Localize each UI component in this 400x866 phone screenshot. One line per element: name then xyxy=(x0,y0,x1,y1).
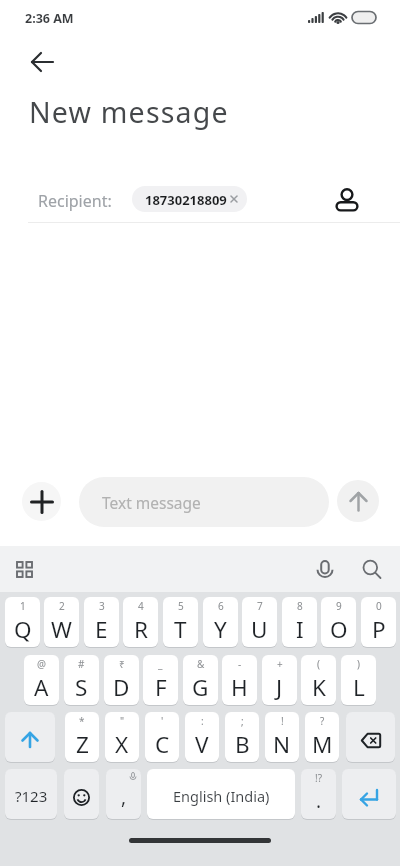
button[interactable]: ₹ xyxy=(104,655,139,705)
staticText: M xyxy=(312,729,333,760)
staticText: : xyxy=(201,714,204,728)
staticText: Q xyxy=(14,614,32,645)
staticText: ) xyxy=(357,657,360,671)
button[interactable]: 5 xyxy=(163,597,198,647)
staticText: 9 xyxy=(336,599,342,613)
button[interactable]: 7 xyxy=(242,597,277,647)
button[interactable]: English (India) xyxy=(147,769,295,819)
button[interactable] xyxy=(8,554,42,588)
button[interactable] xyxy=(346,712,395,762)
staticText: _ xyxy=(158,657,163,671)
button[interactable]: " xyxy=(105,712,139,762)
staticText: , xyxy=(121,784,127,810)
staticText: Text message xyxy=(102,492,201,513)
button[interactable]: @ xyxy=(24,655,59,705)
button[interactable] xyxy=(330,182,364,216)
staticText: C xyxy=(155,729,170,760)
button[interactable]: 2 xyxy=(44,597,79,647)
staticText: W xyxy=(51,614,72,645)
staticText: N xyxy=(273,729,291,760)
button[interactable] xyxy=(308,553,342,587)
staticText: F xyxy=(155,672,167,703)
button[interactable]: ? xyxy=(305,712,339,762)
staticText: ? xyxy=(320,714,325,728)
staticText: P xyxy=(372,614,386,645)
staticText: G xyxy=(192,672,209,703)
staticText: R xyxy=(134,614,148,645)
button[interactable] xyxy=(5,712,55,762)
button[interactable]: ) xyxy=(341,655,376,705)
button[interactable]: # xyxy=(64,655,99,705)
staticText: 2 xyxy=(59,599,65,613)
button[interactable]: 6 xyxy=(203,597,238,647)
staticText: K xyxy=(312,672,326,703)
staticText: . xyxy=(316,788,322,814)
staticText: I xyxy=(296,614,304,645)
staticText: !? xyxy=(315,771,323,785)
button[interactable]: ; xyxy=(225,712,259,762)
staticText: + xyxy=(277,657,283,671)
button[interactable]: * xyxy=(65,712,99,762)
button[interactable]: + xyxy=(262,655,297,705)
button[interactable]: : xyxy=(185,712,219,762)
button[interactable]: 0 xyxy=(361,597,396,647)
button[interactable]: !? xyxy=(301,769,336,819)
staticText: 1 xyxy=(20,599,26,613)
staticText: E xyxy=(95,614,108,645)
button[interactable] xyxy=(354,552,388,586)
staticText: Z xyxy=(76,729,89,760)
button[interactable]: ' xyxy=(145,712,179,762)
staticText: 6 xyxy=(218,599,224,613)
button[interactable]: 18730218809 xyxy=(132,186,247,212)
button[interactable]: Text message xyxy=(79,477,329,527)
button[interactable]: ! xyxy=(265,712,299,762)
button[interactable] xyxy=(342,769,396,819)
staticText: 0 xyxy=(376,599,382,613)
staticText: * xyxy=(79,714,85,728)
staticText: J xyxy=(276,672,283,703)
staticText: " xyxy=(120,714,125,728)
button[interactable]: , xyxy=(106,769,141,819)
staticText: 2:36 AM xyxy=(25,10,74,27)
staticText: ?123 xyxy=(15,786,48,806)
button[interactable]: ( xyxy=(301,655,336,705)
staticText: T xyxy=(174,614,187,645)
staticText: ; xyxy=(241,714,244,728)
staticText: O xyxy=(330,614,348,645)
staticText: V xyxy=(195,729,209,760)
button[interactable]: _ xyxy=(143,655,178,705)
button[interactable]: ?123 xyxy=(5,769,57,819)
staticText: H xyxy=(231,672,248,703)
button[interactable]: & xyxy=(183,655,218,705)
staticText: U xyxy=(251,614,268,645)
button[interactable] xyxy=(337,480,379,522)
button[interactable] xyxy=(24,45,60,79)
staticText: ₹ xyxy=(119,657,125,671)
staticText: English (India) xyxy=(173,786,270,806)
staticText: New message xyxy=(29,93,229,132)
staticText: S xyxy=(75,672,88,703)
staticText: 18730218809 xyxy=(145,191,227,209)
staticText: X xyxy=(115,729,129,760)
staticText: 5 xyxy=(178,599,184,613)
button[interactable]: - xyxy=(222,655,257,705)
staticText: 8 xyxy=(297,599,303,613)
staticText: B xyxy=(235,729,250,760)
staticText: ! xyxy=(281,714,284,728)
button[interactable]: 3 xyxy=(84,597,119,647)
staticText: - xyxy=(238,657,242,671)
staticText: 7 xyxy=(257,599,263,613)
staticText: D xyxy=(113,672,130,703)
staticText: ( xyxy=(317,657,320,671)
button[interactable]: 4 xyxy=(123,597,158,647)
staticText: 3 xyxy=(99,599,105,613)
button[interactable]: 9 xyxy=(321,597,356,647)
button[interactable] xyxy=(64,769,99,819)
staticText: Recipient: xyxy=(38,190,112,212)
staticText: & xyxy=(197,657,205,671)
button[interactable]: 1 xyxy=(5,597,40,647)
staticText: 4 xyxy=(138,599,144,613)
button[interactable] xyxy=(22,482,61,521)
button[interactable]: 8 xyxy=(282,597,317,647)
staticText: L xyxy=(353,672,365,703)
